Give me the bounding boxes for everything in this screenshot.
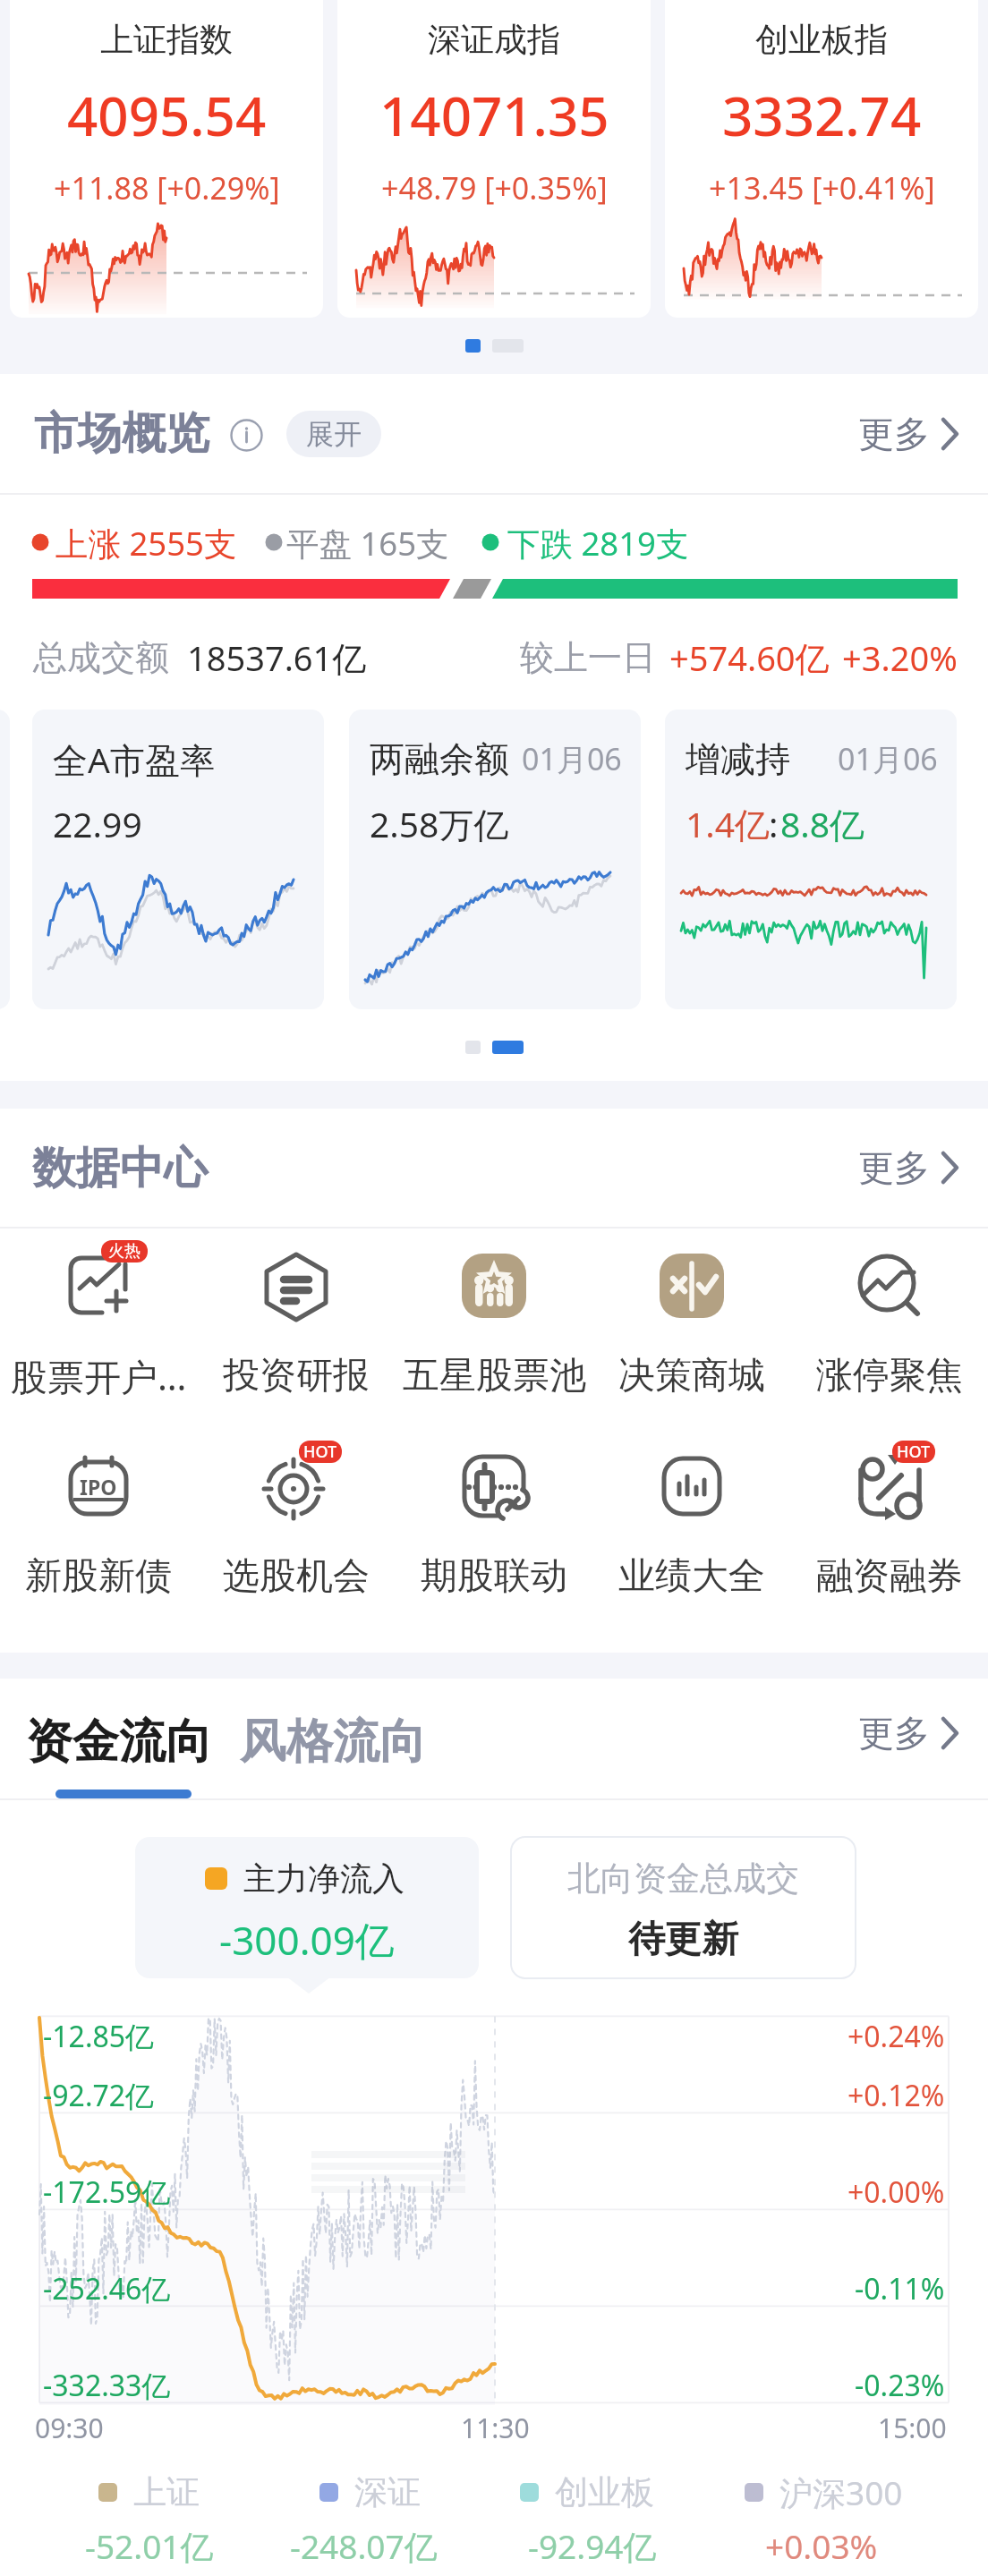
staticText: 较上一日 — [520, 636, 656, 679]
staticText: 创业板指 — [755, 19, 888, 61]
staticText: -0.11% — [855, 2269, 945, 2308]
button[interactable] — [337, 0, 651, 318]
button[interactable]: 全A市盈率 — [32, 710, 324, 1009]
button[interactable]: 选股机会 — [198, 1434, 395, 1594]
staticText: 更多 — [858, 1145, 930, 1190]
button[interactable] — [665, 0, 978, 318]
staticText: -332.33亿 — [43, 2366, 171, 2405]
button[interactable]: 期股联动 — [396, 1434, 592, 1594]
button[interactable] — [135, 1837, 479, 1978]
button[interactable] — [511, 1837, 856, 1978]
staticText: 股票开户… — [11, 1351, 187, 1401]
staticText: 15:00 — [878, 2410, 947, 2446]
staticText: 北向资金总成交 — [567, 1858, 799, 1900]
button[interactable]: 更多 — [848, 1699, 965, 1767]
button[interactable]: 更多 — [848, 400, 965, 468]
staticText: +0.03% — [765, 2523, 878, 2568]
staticText: 五星股票池 — [403, 1353, 586, 1399]
staticText: 增减持 — [686, 737, 790, 781]
staticText: 上涨 2555支 — [55, 521, 237, 565]
staticText: 新股新债 — [25, 1553, 172, 1600]
staticText: 选股机会 — [223, 1553, 370, 1600]
staticText: 更多 — [858, 1711, 930, 1756]
staticText: +3.20% — [842, 634, 958, 681]
staticText: -300.09亿 — [219, 1913, 395, 1967]
staticText: 01月06 — [838, 738, 938, 779]
staticText: 展开 — [306, 417, 362, 452]
staticText: 主力净流入 — [243, 1858, 405, 1899]
staticText: +48.79 [+0.35%] — [381, 167, 608, 208]
staticText: +0.24% — [847, 2017, 945, 2056]
button[interactable]: 风格流向 — [232, 1686, 434, 1798]
staticText: 3332.74 — [722, 79, 922, 152]
staticText: IPO — [80, 1473, 117, 1500]
staticText: 深证成指 — [428, 19, 560, 61]
staticText: : — [769, 800, 779, 847]
staticText: 数据中心 — [32, 1141, 208, 1196]
staticText: 风格流向 — [240, 1713, 426, 1772]
button[interactable]: 说明 — [230, 419, 263, 452]
button[interactable]: 决策商城 — [593, 1234, 790, 1393]
staticText: 11:30 — [461, 2410, 530, 2446]
staticText: 两融余额 — [370, 737, 509, 781]
staticText: -0.23% — [855, 2366, 945, 2405]
button[interactable]: 五星股票池 — [396, 1234, 592, 1393]
button[interactable]: 投资研报 — [198, 1234, 395, 1393]
staticText: 业绩大全 — [618, 1553, 765, 1600]
staticText: 待更新 — [628, 1917, 738, 1963]
button[interactable]: 更多 — [848, 1134, 965, 1202]
button[interactable]: 展开 — [286, 411, 381, 457]
staticText: 沪深300 — [779, 2470, 903, 2515]
staticText: 14071.35 — [379, 79, 609, 152]
staticText: HOT — [897, 1441, 931, 1463]
staticText: 01月06 — [522, 738, 622, 779]
staticText: 决策商城 — [618, 1353, 765, 1399]
staticText: +13.45 [+0.41%] — [709, 167, 935, 208]
staticText: 上证指数 — [100, 19, 233, 61]
button[interactable]: 资金流向 — [18, 1686, 220, 1798]
button[interactable]: 两融余额 — [349, 710, 641, 1009]
staticText: -92.72亿 — [43, 2076, 155, 2115]
staticText: -12.85亿 — [43, 2017, 155, 2056]
staticText: 涨停聚焦 — [816, 1353, 963, 1399]
button[interactable] — [10, 0, 323, 318]
staticText: 期股联动 — [421, 1553, 567, 1600]
staticText: 18537.61亿 — [187, 634, 367, 681]
staticText: -92.94亿 — [528, 2523, 657, 2569]
staticText: 深证 — [354, 2471, 421, 2513]
staticText: 09:30 — [35, 2410, 104, 2446]
staticText: -248.07亿 — [290, 2523, 438, 2569]
button[interactable]: 股票开户… — [0, 1234, 197, 1393]
staticText: 下跌 2819支 — [507, 521, 689, 565]
staticText: 火热 — [108, 1241, 141, 1262]
staticText: 融资融券 — [816, 1553, 963, 1600]
staticText: +11.88 [+0.29%] — [54, 167, 280, 208]
button[interactable]: 新股新债 — [0, 1434, 197, 1594]
staticText: +574.60亿 — [669, 634, 830, 681]
staticText: HOT — [303, 1441, 337, 1463]
staticText: 创业板 — [555, 2471, 654, 2513]
staticText: -172.59亿 — [43, 2172, 171, 2212]
staticText: 资金流向 — [26, 1713, 212, 1772]
staticText: -52.01亿 — [85, 2523, 214, 2569]
staticText: 1.4亿 — [686, 800, 771, 847]
staticText: 投资研报 — [223, 1353, 370, 1399]
staticText: 4095.54 — [67, 79, 267, 152]
staticText: 市场概览 — [34, 406, 209, 462]
staticText: 22.99 — [53, 800, 142, 847]
staticText: 全A市盈率 — [53, 735, 215, 783]
button[interactable]: 业绩大全 — [593, 1434, 790, 1594]
staticText: -252.46亿 — [43, 2269, 171, 2308]
staticText: 8.8亿 — [780, 800, 865, 847]
button[interactable]: 融资融券 — [791, 1434, 988, 1594]
staticText: +0.12% — [847, 2076, 945, 2115]
staticText: 更多 — [858, 412, 930, 456]
staticText: 2.58万亿 — [370, 800, 509, 847]
staticText: +0.00% — [847, 2172, 945, 2212]
staticText: 总成交额 — [33, 636, 169, 679]
button[interactable]: 涨停聚焦 — [791, 1234, 988, 1393]
button[interactable]: 增减持 — [665, 710, 957, 1009]
staticText: 平盘 165支 — [286, 521, 449, 565]
staticText: 上证 — [133, 2471, 200, 2513]
